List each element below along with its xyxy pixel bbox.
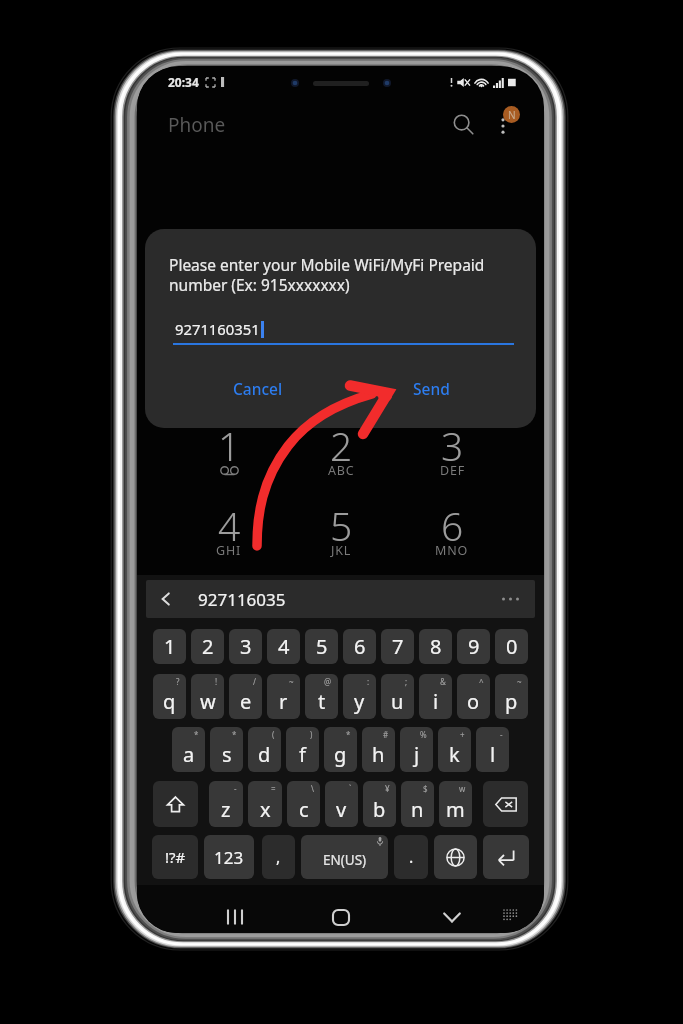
- button[interactable]: n: [401, 781, 434, 827]
- button[interactable]: Hide keyboard: [432, 897, 472, 933]
- button[interactable]: Search: [441, 100, 483, 142]
- staticText: h: [372, 741, 385, 768]
- button[interactable]: r: [267, 674, 300, 719]
- button[interactable]: w: [191, 674, 224, 719]
- staticText: l: [490, 741, 496, 768]
- button[interactable]: x: [248, 781, 282, 827]
- button[interactable]: 2: [286, 419, 396, 495]
- button[interactable]: 8: [419, 629, 452, 664]
- staticText: b: [373, 796, 386, 823]
- staticText: 9: [468, 633, 480, 660]
- staticText: *: [232, 729, 237, 740]
- staticText: ^: [479, 676, 484, 687]
- button[interactable]: c: [287, 781, 320, 827]
- button[interactable]: d: [248, 727, 281, 772]
- button[interactable]: Send: [401, 370, 462, 407]
- staticText: MNO: [435, 542, 469, 559]
- button[interactable]: Enter: [483, 835, 529, 879]
- staticText: 6: [441, 499, 464, 552]
- button[interactable]: e: [229, 674, 262, 719]
- staticText: -: [500, 729, 503, 740]
- staticText: .: [409, 846, 414, 868]
- button[interactable]: 9: [457, 629, 490, 664]
- button[interactable]: !?#: [152, 835, 198, 879]
- button[interactable]: 5: [286, 499, 396, 575]
- staticText: #: [383, 729, 389, 740]
- button[interactable]: p: [495, 674, 528, 719]
- button[interactable]: y: [343, 674, 376, 719]
- button[interactable]: Shift: [153, 781, 198, 827]
- staticText: Send: [413, 378, 450, 399]
- button[interactable]: Keyboard layout: [495, 901, 527, 933]
- button[interactable]: l: [476, 727, 509, 772]
- staticText: :: [367, 676, 370, 687]
- staticText: x: [260, 796, 271, 823]
- staticText: 5: [330, 499, 353, 552]
- button[interactable]: 1: [153, 629, 186, 664]
- button[interactable]: More options: [485, 102, 521, 138]
- button[interactable]: 5: [305, 629, 338, 664]
- staticText: z: [221, 796, 231, 823]
- button[interactable]: s: [210, 727, 243, 772]
- staticText: ,: [276, 846, 281, 868]
- button[interactable]: 2: [191, 629, 224, 664]
- button[interactable]: k: [438, 727, 471, 772]
- staticText: r: [279, 688, 288, 715]
- button[interactable]: f: [286, 727, 319, 772]
- button[interactable]: 7: [381, 629, 414, 664]
- button[interactable]: b: [363, 781, 396, 827]
- staticText: @: [324, 676, 332, 687]
- staticText: -: [234, 783, 237, 794]
- staticText: f: [299, 741, 306, 768]
- button[interactable]: Home: [321, 897, 361, 933]
- button[interactable]: 4: [267, 629, 300, 664]
- button[interactable]: z: [209, 781, 243, 827]
- staticText: /: [253, 676, 256, 687]
- staticText: 4: [278, 633, 290, 660]
- button[interactable]: 3: [397, 419, 507, 495]
- button[interactable]: m: [439, 781, 472, 827]
- button[interactable]: o: [457, 674, 490, 719]
- staticText: 5: [316, 633, 328, 660]
- button[interactable]: v: [325, 781, 358, 827]
- staticText: m: [446, 796, 465, 823]
- button[interactable]: Back: [153, 586, 179, 612]
- staticText: Phone: [168, 112, 226, 138]
- button[interactable]: h: [362, 727, 395, 772]
- button[interactable]: j: [400, 727, 433, 772]
- button[interactable]: q: [153, 674, 186, 719]
- staticText: %: [420, 729, 427, 740]
- button[interactable]: Cancel: [221, 370, 295, 407]
- button[interactable]: Recents: [215, 897, 255, 933]
- button[interactable]: EN(US): [301, 835, 388, 879]
- button[interactable]: g: [324, 727, 357, 772]
- button[interactable]: 6: [343, 629, 376, 664]
- button[interactable]: u: [381, 674, 414, 719]
- staticText: t: [318, 688, 326, 715]
- staticText: Please enter your Mobile WiFi/MyFi Prepa…: [169, 254, 514, 296]
- staticText: q: [163, 688, 176, 715]
- staticText: \: [311, 783, 314, 794]
- button[interactable]: 0: [495, 629, 528, 664]
- button[interactable]: 123: [204, 835, 254, 879]
- staticText: 123: [214, 846, 244, 869]
- staticText: `: [349, 783, 352, 794]
- button[interactable]: 4: [174, 499, 284, 575]
- button[interactable]: 6: [397, 499, 507, 575]
- button[interactable]: i: [419, 674, 452, 719]
- button[interactable]: a: [172, 727, 205, 772]
- button[interactable]: Account: [503, 106, 520, 123]
- button[interactable]: t: [305, 674, 338, 719]
- staticText: &: [440, 676, 446, 687]
- button[interactable]: Backspace: [483, 781, 528, 827]
- staticText: !?#: [165, 847, 186, 867]
- button[interactable]: 1: [174, 419, 284, 495]
- button[interactable]: 3: [229, 629, 262, 664]
- staticText: 2: [330, 419, 353, 472]
- button[interactable]: .: [394, 835, 428, 879]
- button[interactable]: Change language: [434, 835, 477, 879]
- staticText: ;: [405, 676, 408, 687]
- button[interactable]: ,: [262, 835, 295, 879]
- staticText: $: [423, 783, 428, 794]
- staticText: !: [215, 676, 218, 687]
